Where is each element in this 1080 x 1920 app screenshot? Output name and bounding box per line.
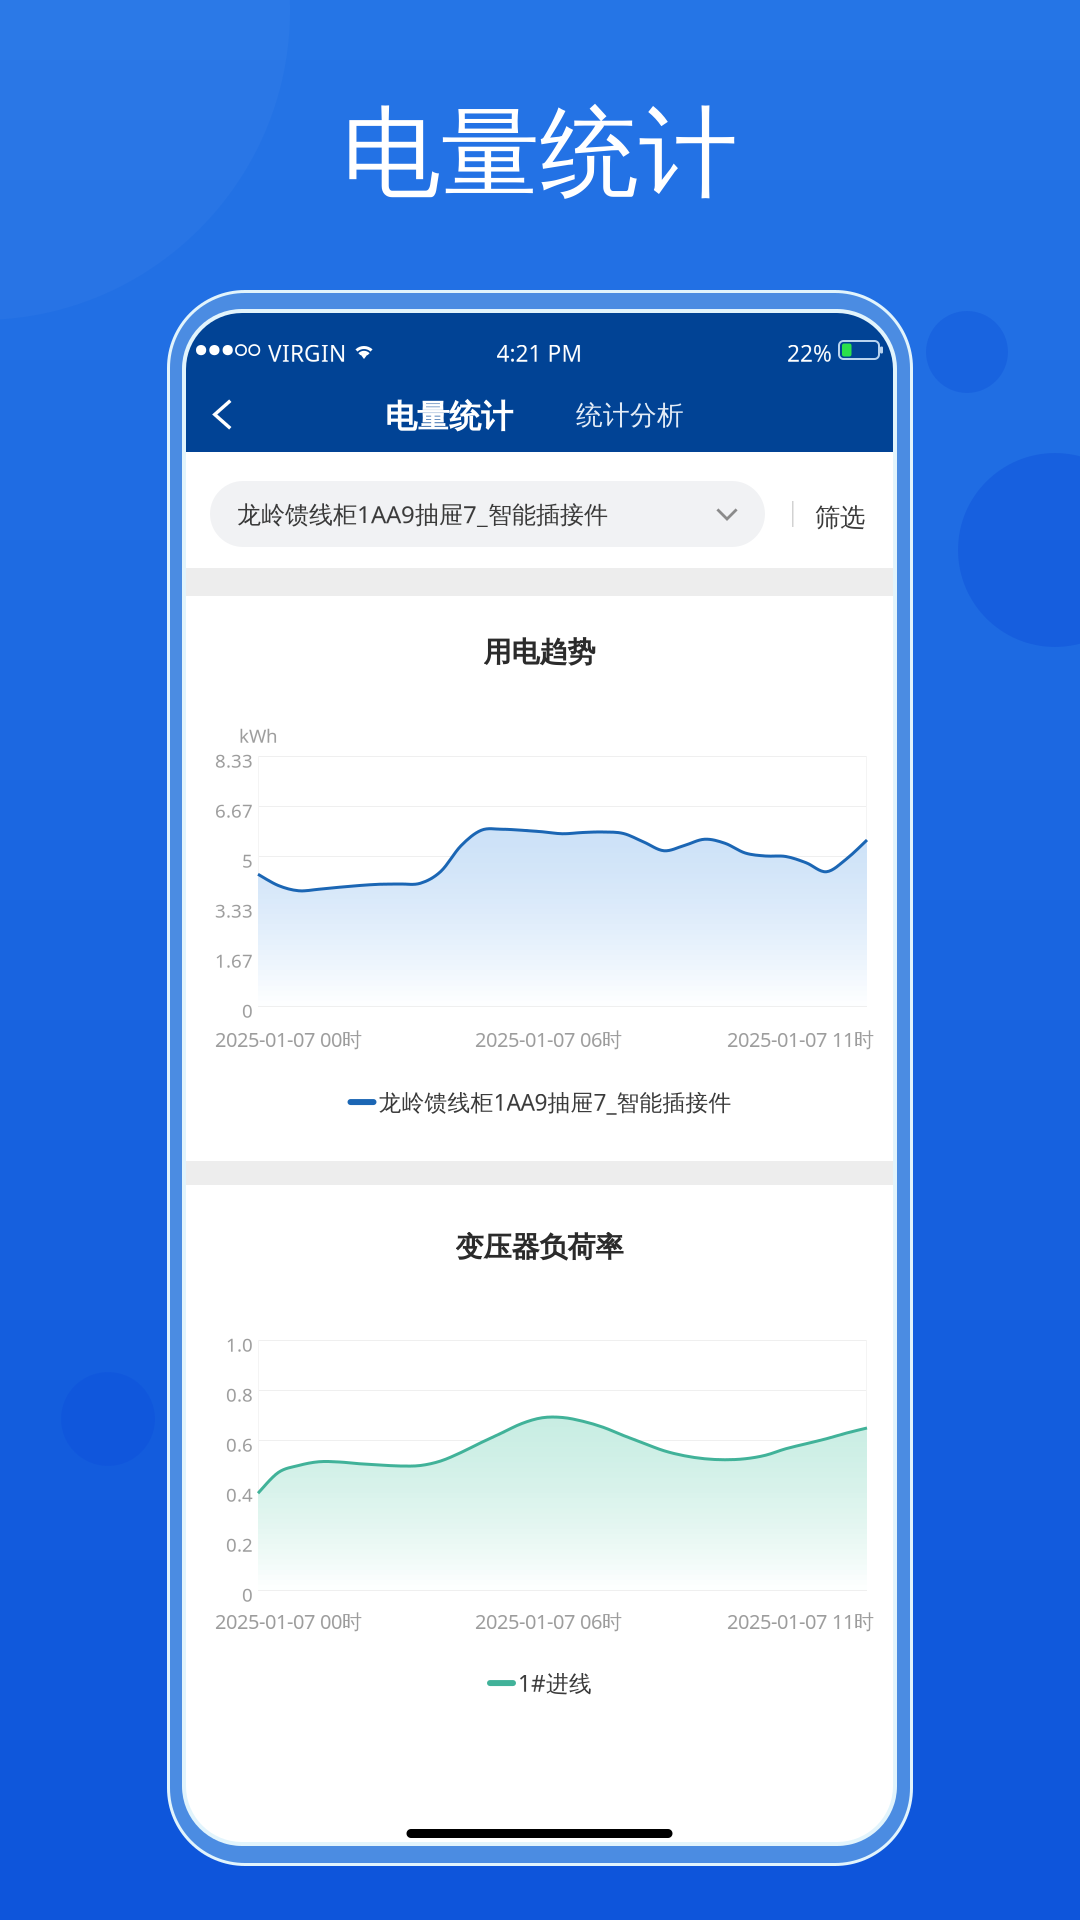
staticText: 0.2 <box>226 1532 253 1557</box>
staticText: 0.6 <box>226 1432 253 1457</box>
staticText: 龙岭馈线柜1AA9抽屉7_智能插接件 <box>237 498 608 530</box>
staticText: 2025-01-07 11时 <box>727 1026 874 1053</box>
staticText: 1.67 <box>215 948 253 973</box>
staticText: 0 <box>242 998 253 1023</box>
staticText: 0.4 <box>226 1482 253 1507</box>
staticText: 0.8 <box>226 1382 253 1407</box>
staticText: 筛选 <box>815 502 865 533</box>
staticText: 龙岭馈线柜1AA9抽屉7_智能插接件 <box>378 1087 731 1117</box>
staticText: kWh <box>239 723 278 748</box>
staticText: 6.67 <box>215 798 253 823</box>
button[interactable]: 电量统计 <box>377 389 521 444</box>
staticText: 变压器负荷率 <box>455 1230 623 1264</box>
staticText: 1#进线 <box>518 1668 592 1698</box>
staticText: 电量统计 <box>385 397 513 436</box>
staticText: 5 <box>242 848 253 873</box>
staticText: 3.33 <box>215 898 253 923</box>
staticText: 用电趋势 <box>483 635 595 669</box>
staticText: 2025-01-07 11时 <box>727 1608 874 1635</box>
staticText: 2025-01-07 06时 <box>475 1026 622 1053</box>
staticText: 8.33 <box>215 748 253 773</box>
staticText: 统计分析 <box>576 399 684 432</box>
staticText: 2025-01-07 00时 <box>215 1026 362 1053</box>
staticText: 22% <box>787 338 832 368</box>
staticText: 2025-01-07 00时 <box>215 1608 362 1635</box>
staticText: 2025-01-07 06时 <box>475 1608 622 1635</box>
staticText: 4:21 PM <box>496 338 582 368</box>
staticText: VIRGIN <box>268 338 346 368</box>
button[interactable]: 筛选 <box>805 492 875 543</box>
button[interactable]: 统计分析 <box>568 391 692 440</box>
button[interactable]: 龙岭馈线柜1AA9抽屉7_智能插接件 <box>210 481 765 547</box>
button[interactable]: Back <box>197 383 248 446</box>
staticText: 1.0 <box>226 1332 253 1357</box>
staticText: 0 <box>242 1582 253 1607</box>
staticText: 电量统计 <box>342 93 738 214</box>
